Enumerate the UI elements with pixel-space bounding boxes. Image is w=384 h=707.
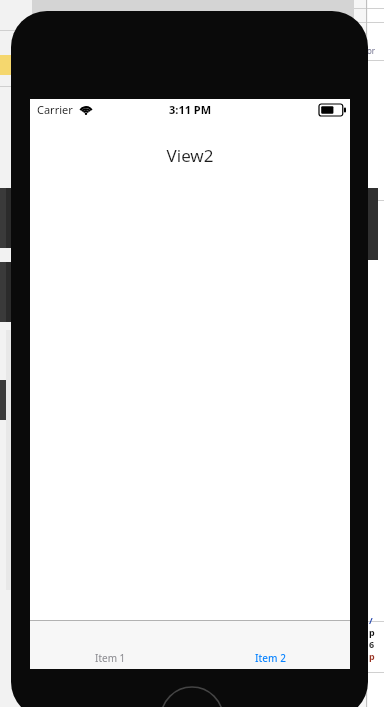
button[interactable]: Item 2: [190, 621, 350, 669]
staticText: 3:11 PM: [169, 102, 212, 117]
button[interactable]: Home: [160, 686, 224, 707]
staticText: Carrier: [37, 102, 73, 117]
staticText: Item 1: [95, 651, 126, 665]
button[interactable]: Item 1: [30, 621, 190, 669]
staticText: or: [367, 45, 376, 56]
staticText: p: [369, 650, 375, 662]
staticText: 6: [369, 638, 375, 650]
staticText: p: [369, 626, 375, 638]
staticText: Item 2: [255, 651, 286, 665]
staticText: View2: [30, 144, 350, 167]
staticText: /: [369, 614, 373, 626]
